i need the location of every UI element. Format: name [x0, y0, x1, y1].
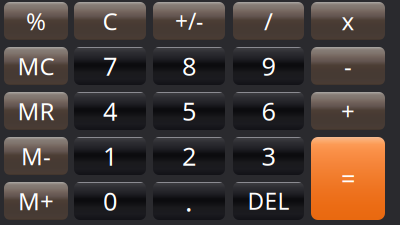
button[interactable]: 7 — [74, 47, 146, 85]
button[interactable]: Minus — [311, 47, 385, 85]
button[interactable]: 0 — [74, 182, 146, 220]
staticText: . — [185, 182, 193, 220]
staticText: MC — [17, 50, 54, 82]
staticText: = — [341, 162, 355, 195]
button[interactable]: 2 — [153, 137, 225, 175]
button[interactable]: Plus minus — [153, 2, 225, 40]
button[interactable]: 8 — [153, 47, 225, 85]
button[interactable]: Percent — [4, 2, 68, 40]
button[interactable]: 6 — [233, 92, 304, 130]
button[interactable]: Memory subtract — [4, 137, 68, 175]
staticText: 1 — [103, 139, 117, 173]
staticText: 7 — [103, 49, 117, 83]
staticText: 0 — [103, 184, 117, 218]
button[interactable]: Divide — [233, 2, 304, 40]
staticText: x — [341, 5, 354, 37]
button[interactable]: Memory clear — [4, 47, 68, 85]
button[interactable]: 4 — [74, 92, 146, 130]
button[interactable]: Memory recall — [4, 92, 68, 130]
staticText: M+ — [18, 185, 54, 217]
button[interactable]: Equals — [311, 137, 385, 220]
button[interactable]: 5 — [153, 92, 225, 130]
staticText: 2 — [182, 139, 196, 173]
staticText: 6 — [261, 94, 275, 128]
staticText: 9 — [261, 49, 275, 83]
button[interactable]: Multiply — [311, 2, 385, 40]
button[interactable]: 1 — [74, 137, 146, 175]
staticText: C — [102, 5, 117, 37]
button[interactable]: Plus — [311, 92, 385, 130]
staticText: 4 — [103, 94, 117, 128]
staticText: + — [341, 95, 355, 127]
staticText: MR — [17, 95, 54, 127]
button[interactable]: 9 — [233, 47, 304, 85]
staticText: M- — [21, 140, 51, 172]
staticText: +/- — [175, 6, 203, 36]
staticText: 3 — [261, 139, 275, 173]
staticText: / — [264, 5, 273, 37]
staticText: % — [26, 5, 46, 37]
button[interactable]: Clear — [74, 2, 146, 40]
staticText: DEL — [247, 186, 289, 216]
staticText: 5 — [182, 94, 196, 128]
button[interactable]: 3 — [233, 137, 304, 175]
staticText: - — [344, 50, 352, 82]
button[interactable]: Delete — [233, 182, 304, 220]
button[interactable]: Memory add — [4, 182, 68, 220]
staticText: 8 — [182, 49, 196, 83]
button[interactable]: Decimal point — [153, 182, 225, 220]
